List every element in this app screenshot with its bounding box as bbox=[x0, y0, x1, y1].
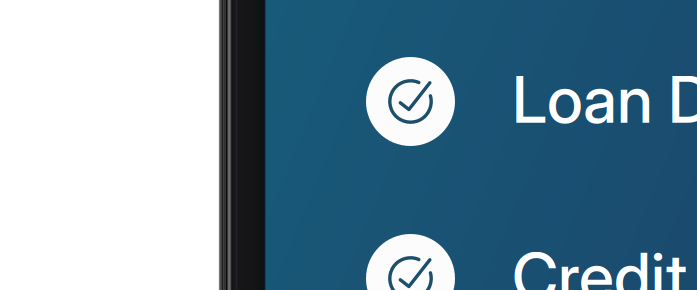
staticText: Loan D bbox=[512, 61, 697, 138]
button[interactable]: Credit bbox=[366, 234, 697, 290]
button[interactable]: Loan D bbox=[366, 57, 697, 146]
staticText: Credit bbox=[512, 238, 687, 290]
